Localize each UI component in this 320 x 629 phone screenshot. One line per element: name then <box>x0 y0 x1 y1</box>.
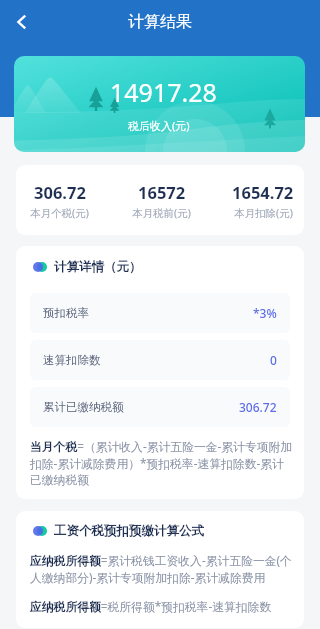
button[interactable]: 306.72 <box>16 165 107 235</box>
staticText: 306.72 <box>239 399 277 415</box>
staticText: 本月个税(元) <box>30 206 89 220</box>
button[interactable]: 预扣税率 <box>30 293 290 333</box>
staticText: 工资个税预扣预缴计算公式 <box>54 523 204 539</box>
staticText: 306.72 <box>34 181 86 203</box>
staticText: 本月税前(元) <box>132 206 191 220</box>
button[interactable]: 1654.72 <box>215 165 304 235</box>
button[interactable]: 累计已缴纳税额 <box>30 387 290 427</box>
button[interactable]: 速算扣除数 <box>30 340 290 380</box>
staticText: 税后收入(元) <box>128 118 190 133</box>
staticText: 计算详情（元） <box>54 259 142 275</box>
staticText: 0 <box>270 352 277 368</box>
button[interactable]: Back <box>0 0 44 44</box>
staticText: 应纳税所得额=累计税钱工资收入-累计五险一金(个人缴纳部分)-累计专项附加扣除-… <box>30 552 293 586</box>
staticText: 当月个税=（累计收入-累计五险一金-累计专项附加扣除-累计减除费用）*预扣税率-… <box>30 438 293 488</box>
staticText: 14917.28 <box>110 75 217 109</box>
staticText: 预扣税率 <box>43 306 89 320</box>
staticText: 累计已缴纳税额 <box>43 400 124 414</box>
staticText: 1654.72 <box>232 181 294 203</box>
staticText: 速算扣除数 <box>43 353 101 367</box>
button[interactable]: 16572 <box>113 165 209 235</box>
staticText: 应纳税所得额=税所得额*预扣税率-速算扣除数 <box>30 598 272 614</box>
staticText: *3% <box>253 305 277 321</box>
staticText: 计算结果 <box>128 12 192 32</box>
staticText: 本月扣除(元) <box>234 206 293 220</box>
staticText: 16572 <box>138 181 186 203</box>
